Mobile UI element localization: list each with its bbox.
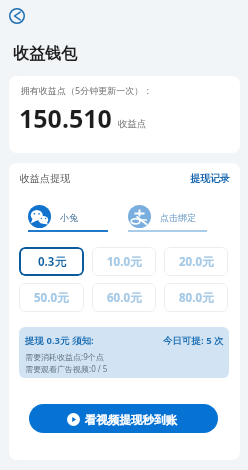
staticText: 0.3元: [38, 254, 66, 270]
staticText: 小兔: [60, 212, 78, 223]
staticText: 150.510: [19, 101, 112, 135]
staticText: 看视频提现秒到账: [85, 413, 177, 427]
staticText: 收益点: [118, 118, 147, 130]
staticText: 点击绑定: [160, 212, 196, 223]
button[interactable]: 点击绑定: [128, 205, 207, 231]
staticText: 10.0元: [107, 254, 142, 270]
button[interactable]: 看视频提现秒到账: [29, 404, 218, 433]
staticText: 需要观看广告视频:0 / 5: [25, 363, 108, 374]
staticText: 收益点提现: [20, 172, 70, 185]
staticText: 60.0元: [107, 290, 142, 306]
staticText: 拥有收益点（5分钟更新一次）：: [21, 84, 153, 96]
staticText: 50.0元: [34, 290, 69, 306]
staticText: 今日可提: 5 次: [163, 334, 224, 347]
staticText: 收益钱包: [13, 44, 77, 64]
button[interactable]: 0.3元: [19, 247, 84, 276]
staticText: 80.0元: [179, 290, 214, 306]
button[interactable]: 50.0元: [19, 283, 84, 312]
button[interactable]: 80.0元: [164, 283, 228, 312]
button[interactable]: Back: [5, 4, 29, 28]
button[interactable]: 提现记录: [190, 172, 230, 185]
staticText: 需要消耗收益点:9个点: [25, 351, 104, 362]
button[interactable]: 小兔: [28, 205, 108, 231]
button[interactable]: 10.0元: [92, 247, 156, 276]
button[interactable]: 20.0元: [164, 247, 228, 276]
staticText: 20.0元: [179, 254, 214, 270]
button[interactable]: 60.0元: [92, 283, 156, 312]
staticText: 提现 0.3元 须知:: [25, 334, 94, 347]
